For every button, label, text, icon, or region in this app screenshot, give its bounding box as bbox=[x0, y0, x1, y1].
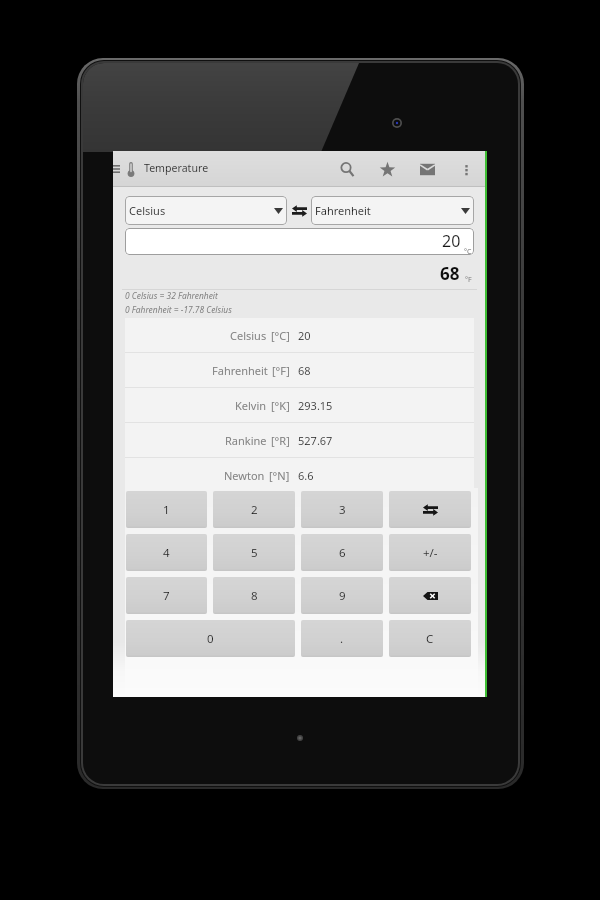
staticText: 20 bbox=[298, 328, 311, 343]
staticText: °C bbox=[464, 247, 472, 255]
staticText: 20 bbox=[442, 230, 461, 252]
button[interactable]: 6 bbox=[301, 534, 383, 571]
staticText: +/- bbox=[423, 545, 438, 561]
button[interactable]: Swap units bbox=[287, 196, 311, 225]
staticText: 1 bbox=[163, 502, 170, 518]
button[interactable]: Fahrenheit bbox=[125, 353, 474, 387]
staticText: [°C] bbox=[271, 328, 290, 343]
button[interactable]: +/- bbox=[389, 534, 471, 571]
button[interactable]: 8 bbox=[213, 577, 295, 614]
staticText: 2 bbox=[251, 502, 258, 518]
staticText: 9 bbox=[339, 588, 346, 604]
button[interactable]: Search bbox=[327, 151, 367, 187]
staticText: Temperature bbox=[144, 161, 209, 175]
staticText: . bbox=[340, 631, 344, 647]
staticText: 3 bbox=[339, 502, 346, 518]
staticText: Celsius bbox=[230, 328, 267, 343]
button[interactable]: 20 bbox=[125, 228, 474, 255]
button[interactable]: Mail bbox=[407, 151, 447, 187]
staticText: 293.15 bbox=[298, 398, 333, 413]
button[interactable]: Celsius bbox=[125, 196, 287, 225]
staticText: Rankine bbox=[225, 433, 267, 448]
button[interactable]: 0 bbox=[126, 620, 295, 657]
staticText: 68 bbox=[298, 363, 311, 378]
button[interactable]: 2 bbox=[213, 491, 295, 528]
button[interactable]: More options bbox=[447, 151, 485, 187]
staticText: 6.6 bbox=[298, 468, 314, 483]
staticText: 4 bbox=[163, 545, 170, 561]
staticText: Fahrenheit bbox=[315, 203, 371, 218]
button[interactable]: C bbox=[389, 620, 471, 657]
staticText: [°R] bbox=[271, 433, 290, 448]
button[interactable]: 3 bbox=[301, 491, 383, 528]
staticText: 7 bbox=[163, 588, 170, 604]
button[interactable]: 9 bbox=[301, 577, 383, 614]
staticText: Kelvin bbox=[235, 398, 267, 413]
staticText: °F bbox=[465, 275, 472, 285]
staticText: Newton bbox=[224, 468, 265, 483]
button[interactable]: 7 bbox=[126, 577, 207, 614]
staticText: 6 bbox=[339, 545, 346, 561]
button[interactable]: 4 bbox=[126, 534, 207, 571]
button[interactable]: 5 bbox=[213, 534, 295, 571]
staticText: 0 bbox=[207, 631, 214, 647]
staticText: [°N] bbox=[269, 468, 290, 483]
button[interactable]: Newton bbox=[125, 458, 474, 492]
staticText: 0 Celsius = 32 Fahrenheit bbox=[125, 290, 218, 301]
button[interactable]: 1 bbox=[126, 491, 207, 528]
button[interactable]: Kelvin bbox=[125, 388, 474, 422]
staticText: C bbox=[426, 631, 434, 647]
staticText: 68 bbox=[440, 262, 460, 284]
staticText: 527.67 bbox=[298, 433, 333, 448]
button[interactable]: Celsius bbox=[125, 318, 474, 352]
button[interactable]: Swap units bbox=[389, 491, 471, 528]
staticText: 5 bbox=[251, 545, 258, 561]
button[interactable]: Open navigation drawer bbox=[113, 151, 124, 187]
button[interactable]: Rankine bbox=[125, 423, 474, 457]
button[interactable]: Backspace bbox=[389, 577, 471, 614]
staticText: [°F] bbox=[272, 363, 290, 378]
staticText: [°K] bbox=[271, 398, 290, 413]
button[interactable]: Favorites bbox=[367, 151, 407, 187]
staticText: Fahrenheit bbox=[212, 363, 268, 378]
button[interactable]: Fahrenheit bbox=[311, 196, 474, 225]
button[interactable]: . bbox=[301, 620, 383, 657]
staticText: 8 bbox=[251, 588, 258, 604]
staticText: 0 Fahrenheit = -17.78 Celsius bbox=[125, 304, 232, 315]
staticText: Celsius bbox=[129, 203, 166, 218]
